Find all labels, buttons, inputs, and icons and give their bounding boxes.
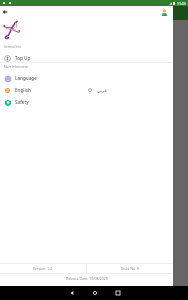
button[interactable]: Safety <box>0 96 173 108</box>
staticText: More Information <box>4 65 29 69</box>
button[interactable]: Language <box>0 72 173 84</box>
staticText: Build No: 8 <box>121 266 139 271</box>
button[interactable]: عربي <box>88 84 108 96</box>
button[interactable]: Top Up <box>0 52 173 64</box>
button[interactable]: Back <box>60 286 83 300</box>
staticText: عربي <box>97 88 108 93</box>
staticText: General Info <box>4 45 21 49</box>
button[interactable]: Home <box>83 286 106 300</box>
staticText: Version: 1.4 <box>33 266 53 271</box>
staticText: Top Up <box>15 55 31 61</box>
button[interactable]: English <box>0 84 173 96</box>
button[interactable]: Back <box>0 7 10 17</box>
staticText: Safety <box>15 99 29 105</box>
staticText: Release Date: 10/08/2020 <box>66 276 108 281</box>
button[interactable]: Profile <box>159 7 170 18</box>
button[interactable]: Recents <box>106 286 129 300</box>
staticText: English <box>15 87 31 93</box>
staticText: Language <box>15 75 37 81</box>
staticText: 11:45 <box>177 1 188 6</box>
